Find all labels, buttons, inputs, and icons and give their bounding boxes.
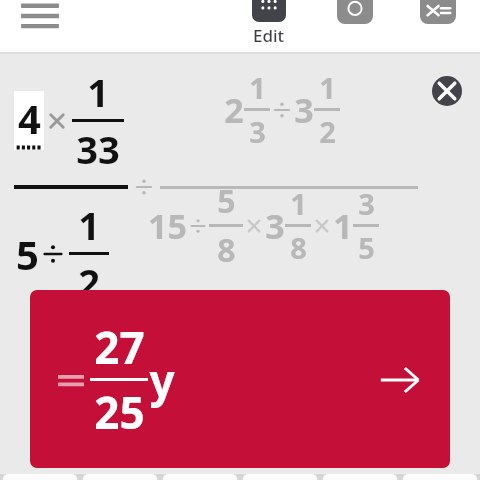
staticText: 5 <box>217 179 236 223</box>
staticText: 1 <box>87 66 109 118</box>
staticText: 2 <box>78 256 100 308</box>
staticText: 2 <box>319 112 336 151</box>
staticText: 15 <box>148 203 187 249</box>
staticText: 4 <box>18 91 41 145</box>
staticText: 8 <box>290 228 307 267</box>
button[interactable] <box>3 474 77 480</box>
staticText: 1 <box>78 199 100 251</box>
staticText: 27 <box>94 317 145 377</box>
staticText: 3 <box>249 112 266 151</box>
button[interactable]: 4 <box>16 91 42 150</box>
button[interactable]: Next step <box>378 358 422 402</box>
staticText: 1 <box>249 68 266 107</box>
button[interactable] <box>243 474 317 480</box>
button[interactable] <box>163 474 237 480</box>
button[interactable] <box>83 474 157 480</box>
staticText: 1 <box>333 203 353 249</box>
staticText: y <box>149 350 175 410</box>
staticText: 33 <box>76 123 120 175</box>
button[interactable]: Camera <box>326 0 384 40</box>
button[interactable] <box>323 474 397 480</box>
staticText: Edit <box>253 24 285 42</box>
button[interactable]: 27 <box>30 290 450 468</box>
staticText: 3 <box>265 203 285 249</box>
staticText: 3 <box>358 184 375 223</box>
staticText: 25 <box>94 382 145 442</box>
staticText: 5 <box>358 228 375 267</box>
button[interactable]: Menu <box>12 0 68 40</box>
staticText: 2 <box>224 87 244 133</box>
staticText: 1 <box>290 184 307 223</box>
staticText: 1 <box>319 68 336 107</box>
button[interactable]: Close <box>430 74 464 108</box>
staticText: 5 <box>16 227 39 281</box>
button[interactable] <box>403 474 477 480</box>
staticText: 3 <box>294 87 314 133</box>
button[interactable]: Solve for X <box>408 0 468 40</box>
button[interactable]: Edit <box>230 0 308 52</box>
staticText: 8 <box>217 228 236 272</box>
